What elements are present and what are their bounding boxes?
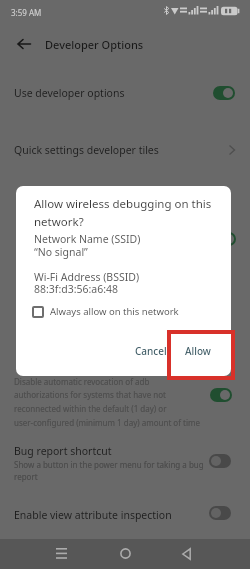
button[interactable]: Use developer options (0, 76, 250, 110)
button[interactable]: Always allow on this network (32, 305, 179, 318)
staticText: 3:59 AM (11, 7, 42, 18)
staticText: Cancel (135, 344, 167, 358)
staticText: Allow (185, 344, 211, 358)
staticText: Network Name (SSID) (34, 232, 141, 246)
staticText: Quick settings developer tiles (14, 143, 159, 157)
button[interactable] (209, 506, 231, 520)
button[interactable] (210, 388, 232, 402)
button[interactable] (50, 542, 72, 564)
button[interactable] (176, 543, 197, 565)
staticText: Bug report shortcut (14, 444, 112, 458)
staticText: Disable automatic revocation of adb auth… (14, 376, 219, 428)
button[interactable] (214, 232, 236, 246)
staticText: Developer Options (45, 37, 144, 52)
staticText: Always allow on this network (50, 305, 179, 318)
staticText: Show a button in the power menu for taki… (14, 459, 219, 483)
staticText: Allow wireless debugging on this network… (34, 196, 220, 229)
button[interactable]: Cancel (126, 340, 176, 362)
button[interactable] (213, 86, 235, 100)
staticText: Use developer options (14, 86, 125, 100)
button[interactable]: Allow (175, 340, 221, 362)
button[interactable] (114, 542, 136, 564)
staticText: “No signal” (34, 245, 88, 259)
staticText: Enable view attribute inspection (14, 508, 172, 522)
staticText: Wi-Fi Address (BSSID) (34, 270, 140, 284)
button[interactable] (209, 454, 231, 468)
staticText: 88:3f:d3:56:a6:48 (34, 282, 119, 296)
button[interactable]: Quick settings developer tiles (0, 134, 250, 166)
